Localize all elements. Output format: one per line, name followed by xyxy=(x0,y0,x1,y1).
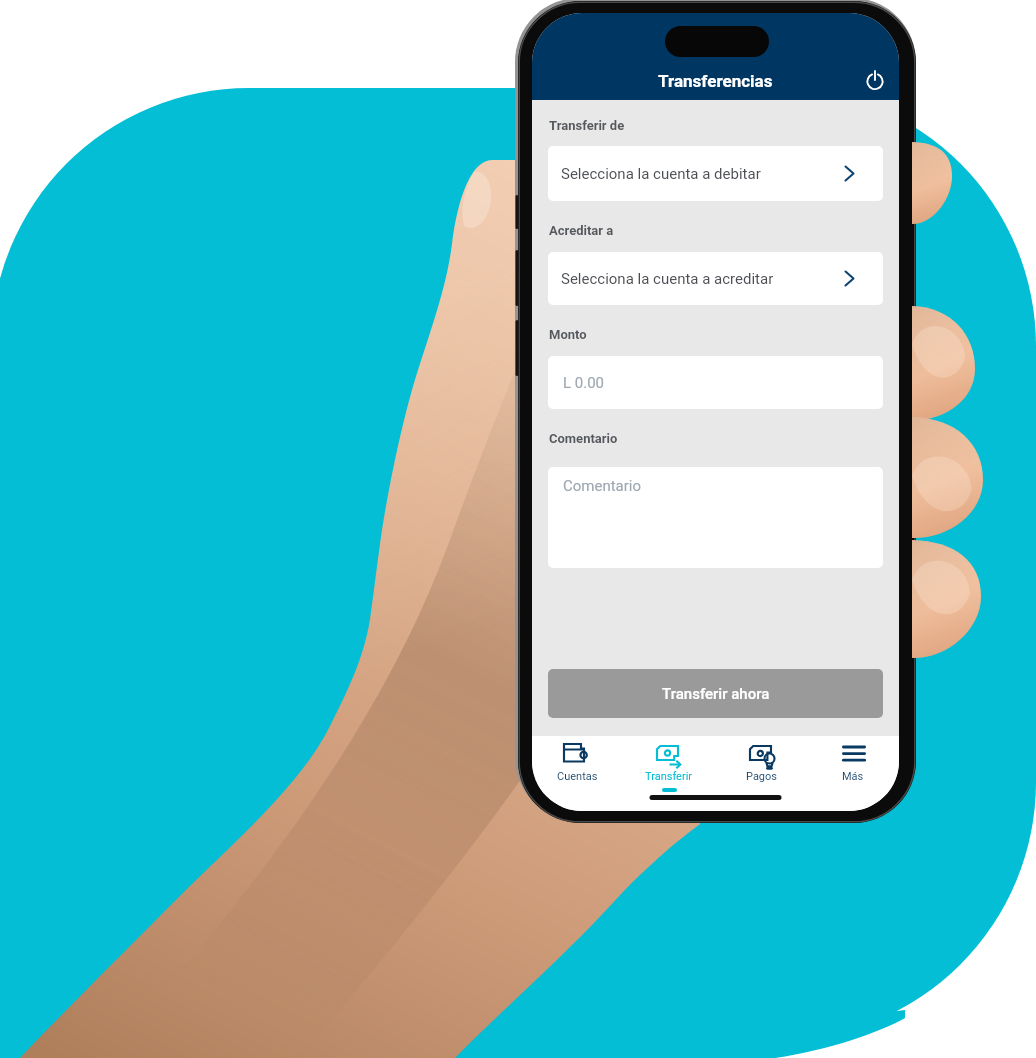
button[interactable]: Selecciona la cuenta a debitar xyxy=(548,146,883,201)
staticText: L 0.00 xyxy=(563,374,605,392)
staticText: Monto xyxy=(549,327,587,342)
staticText: Selecciona la cuenta a acreditar xyxy=(561,270,774,288)
button[interactable]: L 0.00 xyxy=(548,356,883,409)
staticText: Pagos xyxy=(746,770,777,783)
button[interactable]: Cuentas xyxy=(532,736,623,811)
staticText: Cuentas xyxy=(557,770,598,783)
button[interactable]: Transferir ahora xyxy=(548,669,883,718)
button[interactable]: Cerrar sesion xyxy=(859,64,891,96)
staticText: Transferir ahora xyxy=(662,685,770,703)
staticText: Comentario xyxy=(549,431,618,446)
staticText: Más xyxy=(842,770,864,783)
button[interactable]: Más xyxy=(807,736,899,811)
staticText: Transferir de xyxy=(549,118,625,133)
staticText: Comentario xyxy=(563,477,642,495)
button[interactable]: Comentario xyxy=(548,467,883,568)
button[interactable]: Transferir xyxy=(623,736,715,811)
button[interactable]: Selecciona la cuenta a acreditar xyxy=(548,252,883,305)
button[interactable]: Pagos xyxy=(715,736,807,811)
staticText: Transferir xyxy=(645,770,693,783)
staticText: Acreditar a xyxy=(549,223,614,238)
staticText: Selecciona la cuenta a debitar xyxy=(561,165,761,183)
staticText: Transferencias xyxy=(658,71,773,91)
